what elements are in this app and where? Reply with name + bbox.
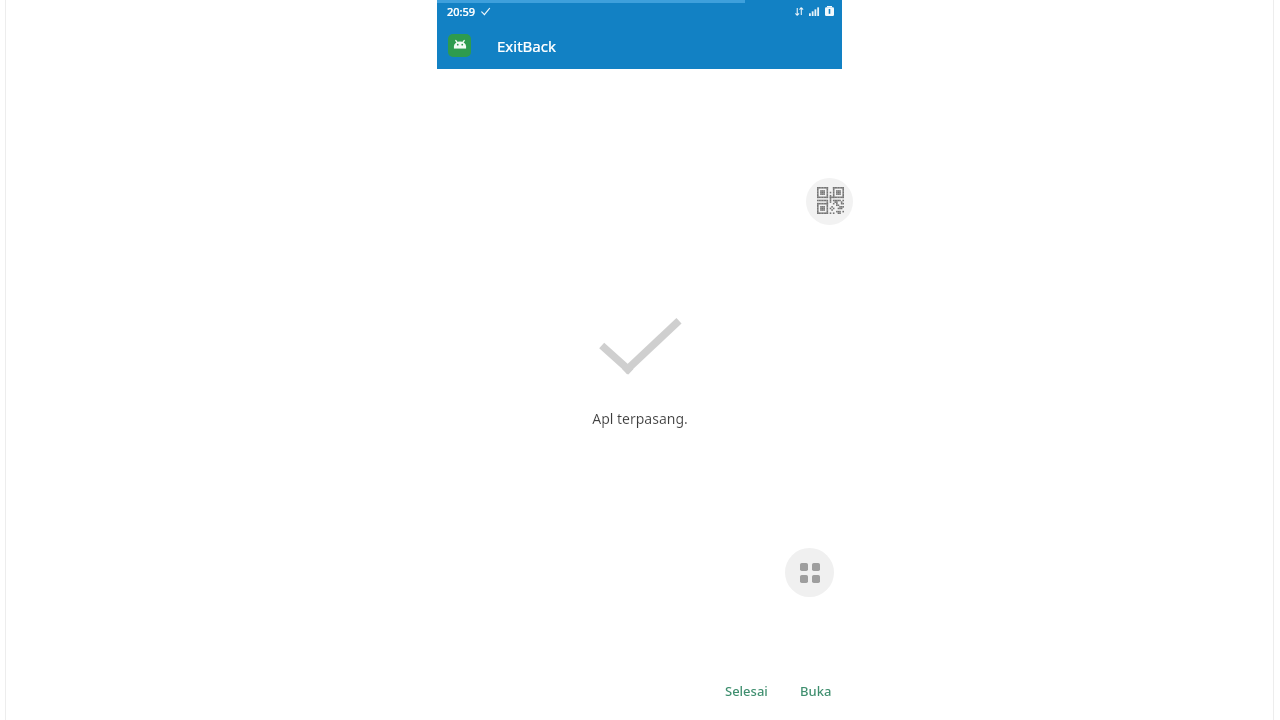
staticText: Buka	[800, 682, 832, 700]
button[interactable]: Buka	[788, 676, 844, 706]
staticText: 20:59	[447, 4, 476, 19]
staticText: ExitBack	[497, 36, 556, 56]
button[interactable]: Scan QR code	[806, 178, 853, 225]
button[interactable]: Selesai	[713, 676, 780, 706]
staticText: Apl terpasang.	[592, 409, 688, 428]
button[interactable]: All apps	[785, 548, 834, 597]
staticText: Selesai	[725, 682, 768, 700]
